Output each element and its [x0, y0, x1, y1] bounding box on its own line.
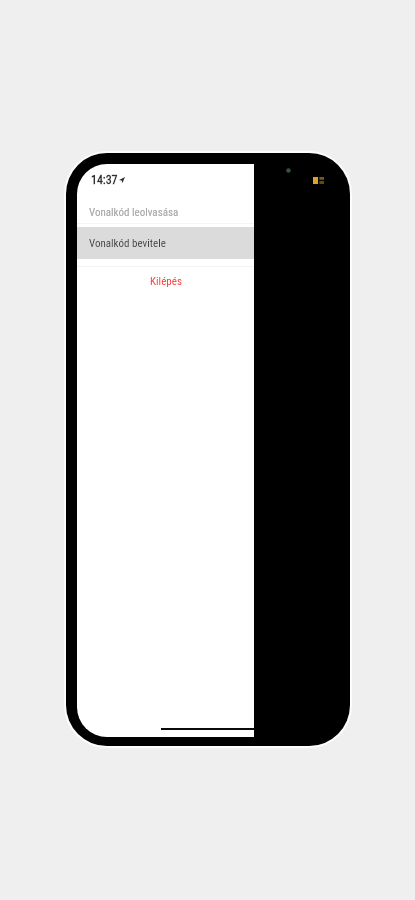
- staticText: 14:37: [91, 173, 118, 187]
- staticText: Kilépés: [150, 275, 182, 288]
- other: Location in use: [119, 177, 125, 183]
- button[interactable]: Vonalkód bevitele: [77, 227, 254, 259]
- staticText: Vonalkód leolvasása: [89, 206, 179, 219]
- staticText: Vonalkód bevitele: [89, 237, 166, 250]
- button[interactable]: Vonalkód leolvasása: [77, 199, 254, 226]
- button[interactable]: Kilépés: [77, 268, 254, 294]
